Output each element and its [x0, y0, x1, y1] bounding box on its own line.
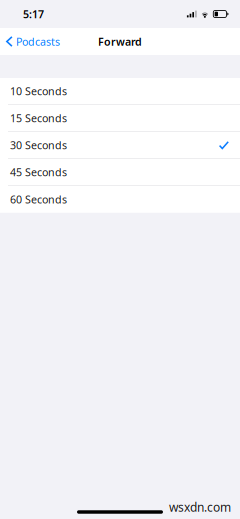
- staticText: 60 Seconds: [10, 192, 67, 206]
- staticText: Forward: [98, 34, 142, 49]
- button[interactable]: 30 Seconds: [0, 132, 240, 159]
- button[interactable]: 10 Seconds: [0, 78, 240, 105]
- staticText: 5:17: [23, 7, 44, 21]
- staticText: 30 Seconds: [10, 138, 67, 152]
- staticText: wsxdn.com: [169, 499, 231, 515]
- button[interactable]: Podcasts: [0, 29, 66, 54]
- staticText: Podcasts: [16, 34, 60, 49]
- button[interactable]: 45 Seconds: [0, 159, 240, 186]
- button[interactable]: 15 Seconds: [0, 105, 240, 132]
- button[interactable]: 60 Seconds: [0, 186, 240, 213]
- staticText: 10 Seconds: [10, 84, 67, 98]
- staticText: 45 Seconds: [10, 165, 67, 179]
- staticText: 15 Seconds: [10, 111, 67, 125]
